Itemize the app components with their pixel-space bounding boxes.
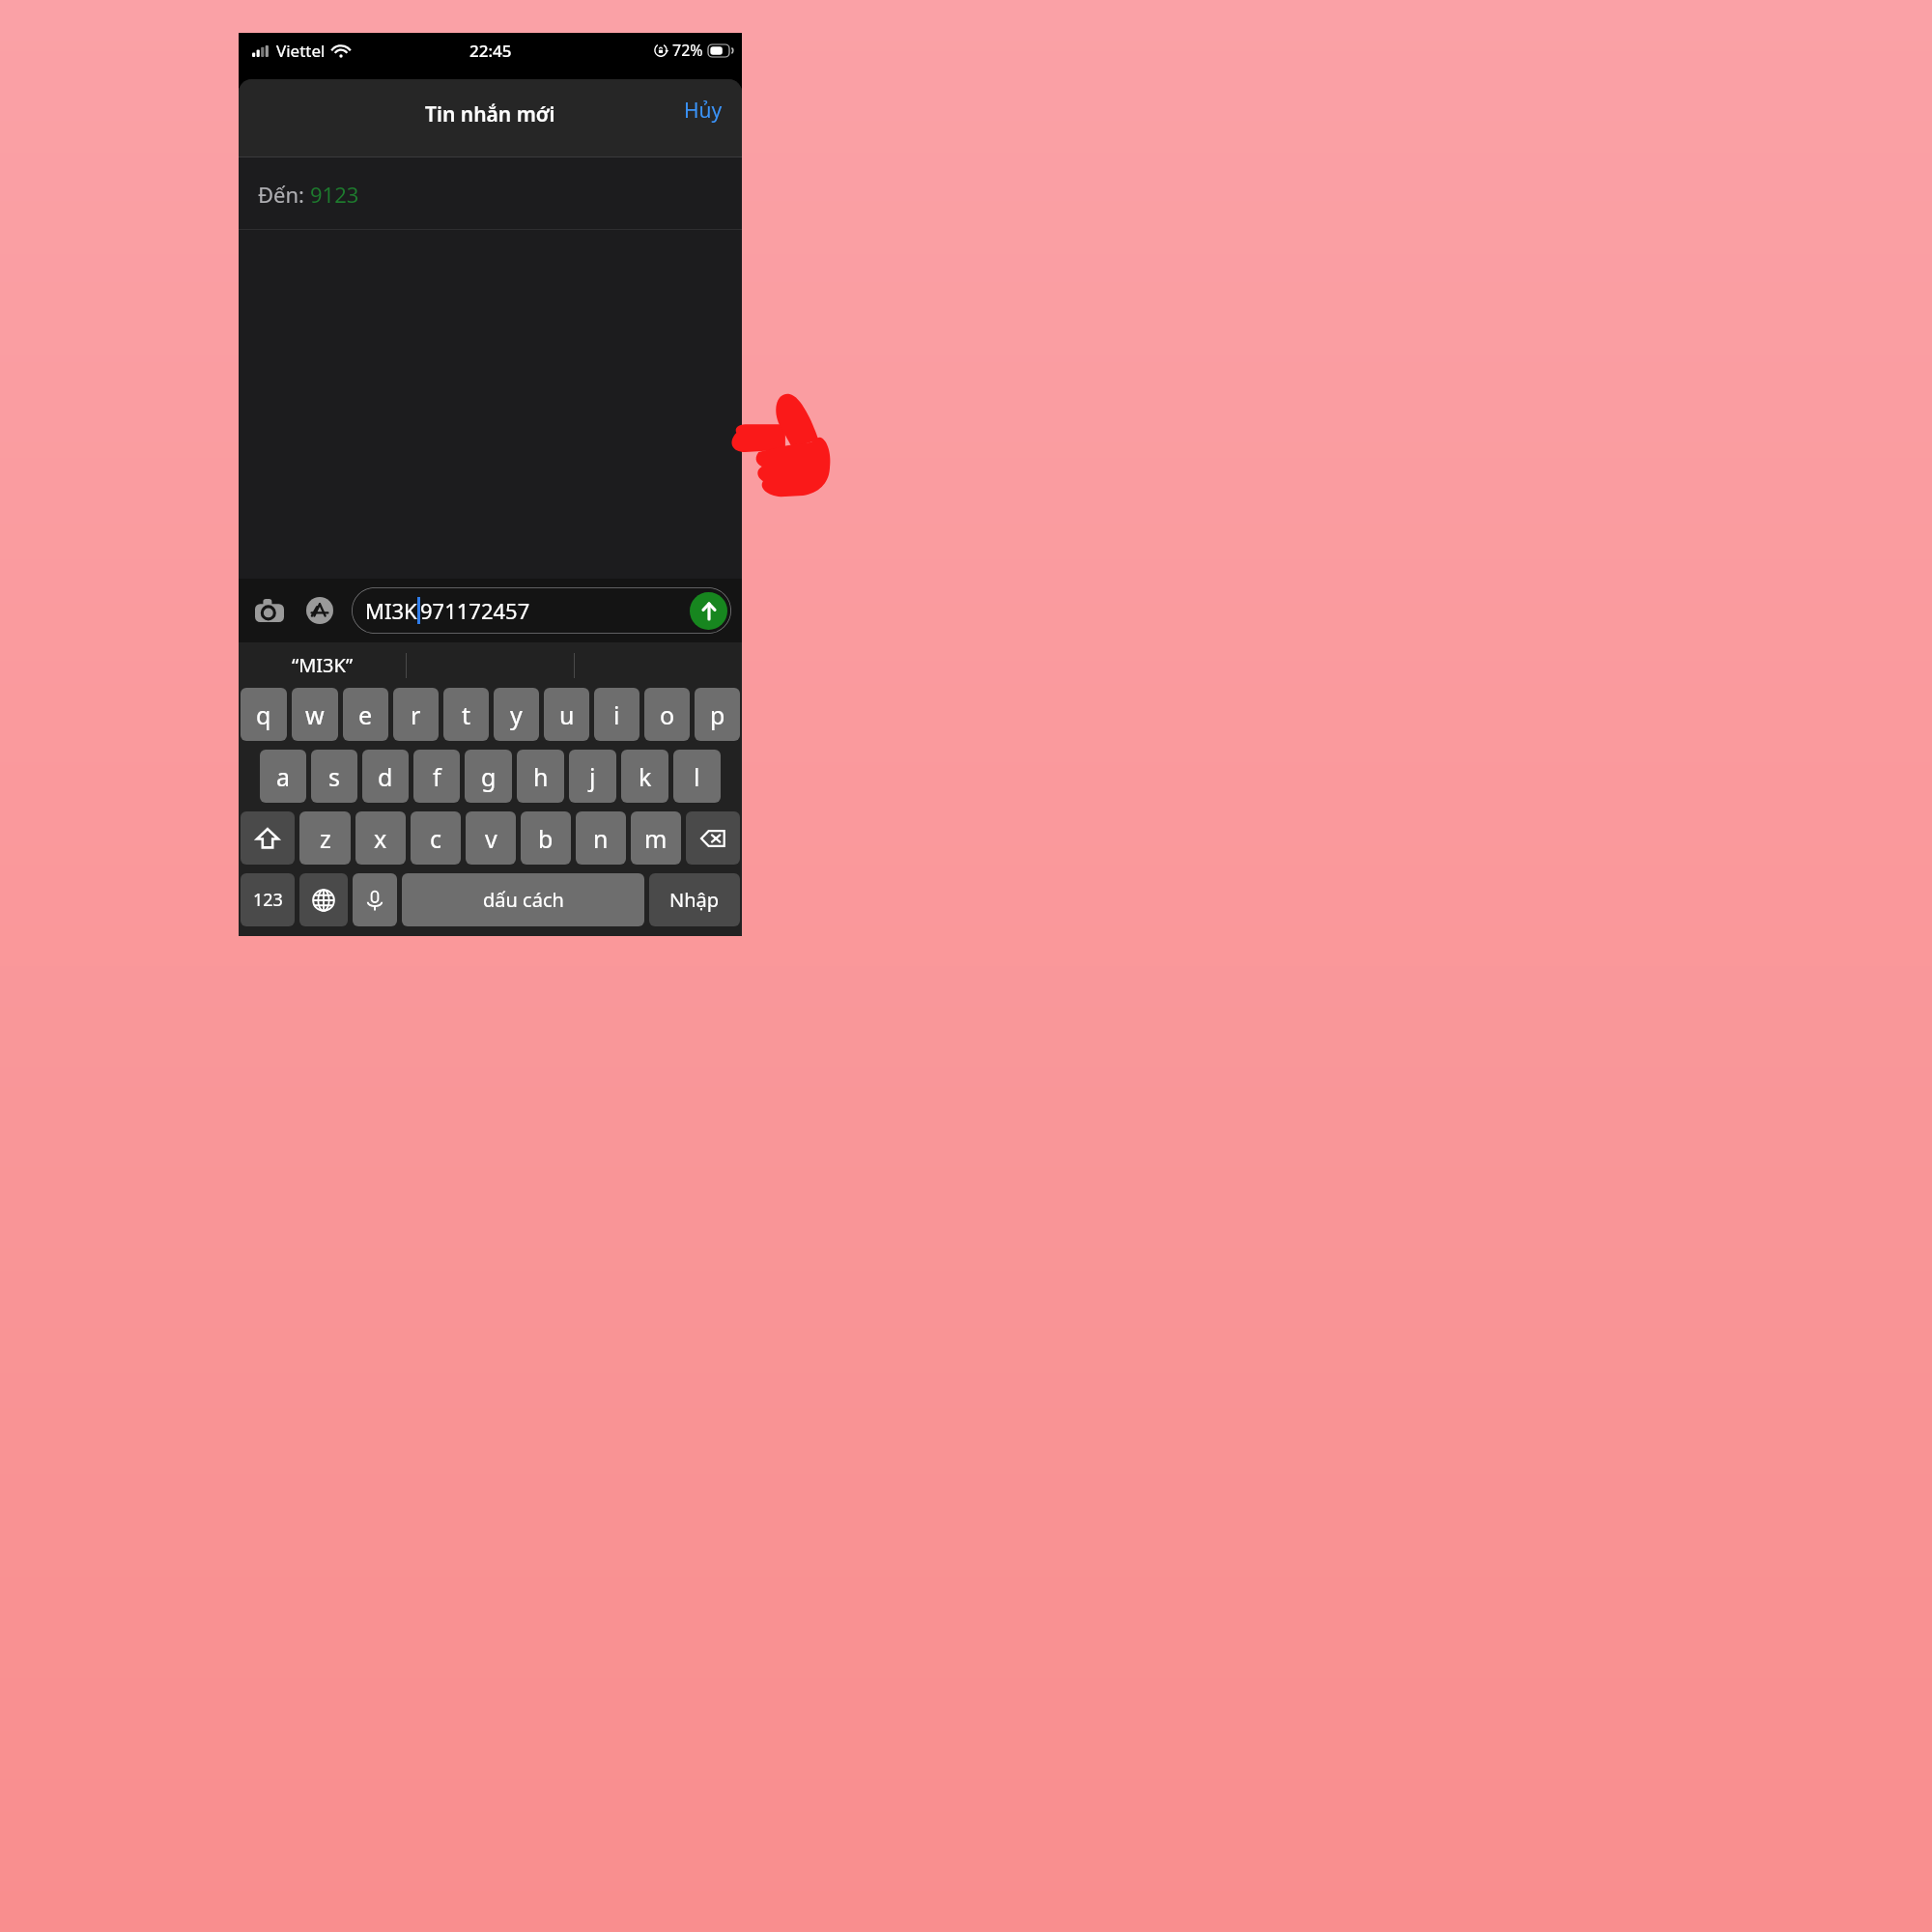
staticText: dấu cách	[483, 887, 564, 913]
staticText: n	[593, 822, 609, 855]
button[interactable]: Dictation	[353, 873, 397, 926]
staticText: d	[378, 760, 393, 793]
button[interactable]: u	[544, 688, 589, 741]
button[interactable]: z	[299, 811, 351, 865]
button[interactable]: Camera	[249, 590, 290, 631]
staticText: 9123	[310, 180, 359, 209]
staticText: Nhập	[669, 887, 720, 913]
staticText: r	[411, 698, 421, 731]
button[interactable]: c	[411, 811, 461, 865]
staticText: 72%	[672, 40, 703, 61]
staticText: a	[276, 760, 291, 793]
staticText: v	[485, 822, 497, 855]
button[interactable]: h	[517, 750, 564, 803]
staticText: Viettel	[276, 40, 326, 62]
staticText: Hủy	[684, 97, 723, 125]
button[interactable]: a	[260, 750, 306, 803]
staticText: 123	[253, 888, 283, 912]
button[interactable]: m	[631, 811, 681, 865]
staticText: p	[710, 698, 725, 731]
button[interactable]: s	[311, 750, 357, 803]
button[interactable]: x	[355, 811, 406, 865]
button[interactable]: o	[644, 688, 690, 741]
button[interactable]: l	[673, 750, 721, 803]
staticText: y	[510, 698, 523, 731]
button[interactable]: App Store	[299, 590, 340, 631]
staticText: m	[644, 822, 668, 855]
staticText: g	[481, 760, 497, 793]
staticText: u	[559, 698, 575, 731]
staticText: x	[374, 822, 387, 855]
staticText: f	[433, 760, 441, 793]
staticText: 22:45	[469, 40, 512, 62]
staticText: z	[320, 822, 331, 855]
button[interactable]: i	[594, 688, 639, 741]
button[interactable]: e	[343, 688, 388, 741]
button[interactable]: g	[465, 750, 512, 803]
staticText: c	[430, 822, 442, 855]
button[interactable]: n	[576, 811, 626, 865]
button[interactable]: k	[621, 750, 668, 803]
button[interactable]: p	[695, 688, 740, 741]
staticText: “MI3K”	[292, 652, 354, 678]
button[interactable]: r	[393, 688, 439, 741]
staticText: Đến:	[258, 180, 310, 209]
button[interactable]: MI3K	[352, 587, 731, 634]
staticText: 971172457	[420, 596, 530, 625]
staticText: Tin nhắn mới	[425, 100, 555, 128]
staticText: i	[613, 698, 620, 731]
button[interactable]: “MI3K”	[239, 642, 406, 688]
button[interactable]: b	[521, 811, 571, 865]
staticText: e	[358, 698, 373, 731]
staticText: h	[533, 760, 549, 793]
button[interactable]: t	[443, 688, 489, 741]
staticText: k	[639, 760, 652, 793]
button[interactable]: Backspace	[686, 811, 740, 865]
button[interactable]: dấu cách	[402, 873, 644, 926]
button[interactable]: 123	[241, 873, 295, 926]
staticText: w	[305, 698, 325, 731]
button[interactable]: f	[413, 750, 460, 803]
staticText: o	[660, 698, 675, 731]
button[interactable]: j	[569, 750, 616, 803]
staticText: t	[462, 698, 471, 731]
staticText: MI3K	[365, 596, 417, 625]
button[interactable]: Change keyboard	[299, 873, 348, 926]
button[interactable]: w	[292, 688, 338, 741]
button[interactable]: d	[362, 750, 409, 803]
button[interactable]: y	[494, 688, 539, 741]
button[interactable]: Đến:	[239, 157, 742, 230]
button[interactable]: Shift	[241, 811, 295, 865]
staticText: b	[538, 822, 554, 855]
staticText: s	[328, 760, 340, 793]
button[interactable]: v	[466, 811, 516, 865]
button[interactable]: Hủy	[674, 91, 732, 130]
staticText: q	[256, 698, 271, 731]
button[interactable]: Nhập	[649, 873, 740, 926]
staticText: l	[694, 760, 700, 793]
button[interactable]: Send	[690, 592, 727, 630]
staticText: j	[589, 760, 596, 793]
button[interactable]: q	[241, 688, 287, 741]
